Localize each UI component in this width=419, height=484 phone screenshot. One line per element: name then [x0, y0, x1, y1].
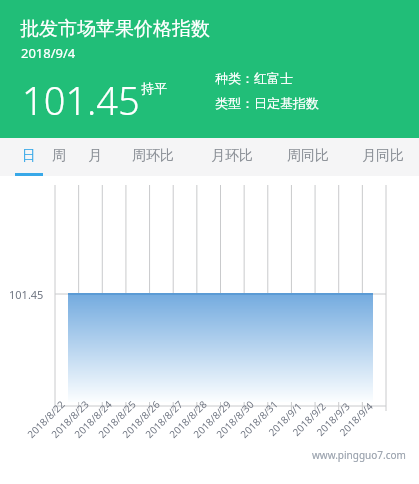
- staticText: 2018/9/1: [265, 399, 305, 439]
- staticText: 周同比: [287, 147, 329, 165]
- button[interactable]: 周: [45, 138, 73, 176]
- staticText: 2018/8/26: [119, 397, 163, 441]
- button[interactable]: 周同比: [278, 138, 338, 176]
- staticText: 2018/8/24: [71, 397, 115, 441]
- staticText: 类型：日定基指数: [215, 95, 319, 111]
- staticText: 持平: [141, 80, 167, 96]
- staticText: 2018/8/28: [166, 397, 210, 441]
- staticText: 2018/8/30: [213, 397, 257, 441]
- staticText: 2018/8/22: [24, 397, 68, 441]
- staticText: 2018/8/31: [237, 397, 281, 441]
- staticText: 2018/8/27: [142, 397, 186, 441]
- staticText: 月同比: [362, 147, 404, 165]
- staticText: 周环比: [132, 147, 174, 165]
- button[interactable]: 月: [81, 138, 109, 176]
- staticText: 日: [22, 147, 36, 165]
- button[interactable]: 月同比: [353, 138, 413, 176]
- staticText: www.pingguo7.com: [312, 448, 406, 462]
- staticText: 2018/8/29: [190, 397, 234, 441]
- staticText: 2018/9/3: [313, 399, 353, 439]
- staticText: 批发市场苹果价格指数: [20, 17, 210, 41]
- staticText: 101.45: [9, 287, 44, 302]
- staticText: 种类：红富士: [215, 70, 293, 86]
- staticText: 月环比: [211, 147, 253, 165]
- staticText: 2018/9/4: [336, 399, 376, 439]
- staticText: 2018/9/4: [21, 44, 76, 62]
- staticText: 周: [52, 147, 66, 165]
- staticText: 2018/9/2: [289, 399, 329, 439]
- button[interactable]: 日: [15, 138, 43, 176]
- button[interactable]: 月环比: [202, 138, 262, 176]
- staticText: 101.45: [22, 74, 140, 126]
- staticText: 2018/8/25: [95, 397, 139, 441]
- button[interactable]: 周环比: [123, 138, 183, 176]
- staticText: 2018/8/23: [48, 397, 92, 441]
- staticText: 月: [88, 147, 102, 165]
